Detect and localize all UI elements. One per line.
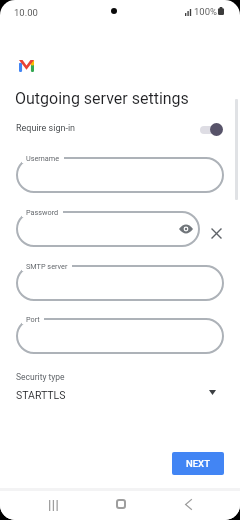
button[interactable]: Show password: [177, 220, 195, 238]
staticText: Security type: [16, 372, 65, 382]
button[interactable]: NEXT: [172, 452, 224, 475]
button[interactable]: [16, 318, 224, 354]
staticText: NEXT: [186, 458, 210, 469]
staticText: Outgoing server settings: [15, 89, 189, 108]
staticText: Username: [26, 154, 60, 163]
staticText: 100%: [194, 6, 217, 17]
staticText: 10.00: [14, 7, 38, 18]
button[interactable]: Require sign-in: [0, 118, 240, 139]
button[interactable]: [16, 211, 200, 247]
staticText: Require sign-in: [16, 123, 76, 134]
button[interactable]: Back: [168, 489, 208, 517]
button[interactable]: [16, 157, 224, 193]
button[interactable]: Security type: [0, 368, 240, 404]
button[interactable]: Clear password: [206, 223, 226, 243]
staticText: Password: [26, 208, 59, 217]
button[interactable]: Require sign-in: [200, 122, 223, 136]
staticText: STARTTLS: [16, 389, 66, 401]
staticText: SMTP server: [26, 262, 68, 271]
button[interactable]: Recent apps: [33, 489, 74, 517]
button[interactable]: [16, 265, 224, 301]
staticText: Port: [26, 315, 40, 324]
button[interactable]: Home: [101, 489, 141, 517]
